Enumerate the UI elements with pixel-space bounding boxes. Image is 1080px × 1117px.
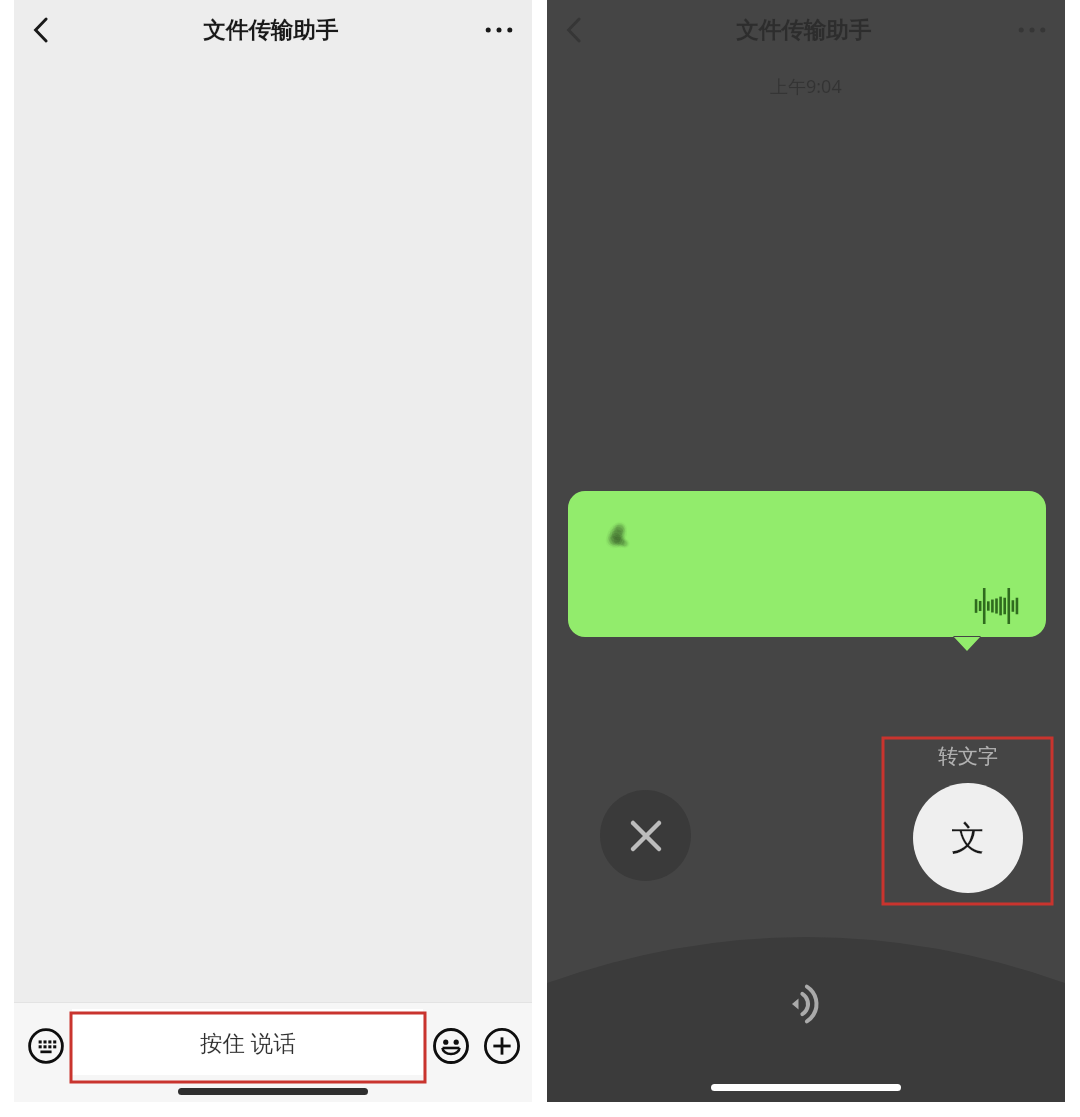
- button[interactable]: More: [478, 1022, 526, 1070]
- staticText: 按住 说话: [200, 1027, 296, 1058]
- staticText: 文: [951, 817, 985, 860]
- staticText: 文件传输助手: [736, 16, 871, 44]
- button[interactable]: Back: [14, 0, 74, 60]
- staticText: 转文字: [938, 744, 998, 769]
- staticText: 文件传输助手: [203, 16, 338, 44]
- button[interactable]: More options: [466, 0, 532, 60]
- button[interactable]: Cancel: [600, 790, 691, 881]
- button[interactable]: Keyboard: [22, 1022, 70, 1070]
- button[interactable]: 按住 说话: [72, 1009, 423, 1075]
- staticText: 上午9:04: [770, 74, 842, 99]
- button[interactable]: Emoji: [427, 1022, 475, 1070]
- button[interactable]: 转文字 Convert to text: [913, 783, 1023, 893]
